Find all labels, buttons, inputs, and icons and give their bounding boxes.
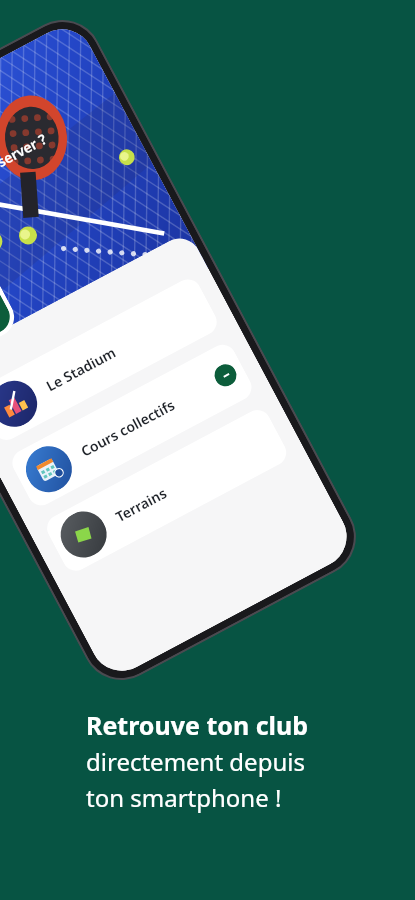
- button[interactable]: Terrains: [42, 405, 291, 575]
- button[interactable]: Le Stadium: [0, 274, 222, 445]
- staticText: Que voulez-vous réserver ?: [0, 129, 50, 232]
- staticText: Bonjour Store: [0, 118, 4, 211]
- staticText: directement depuis: [86, 745, 305, 778]
- staticText: Cours collectifs: [77, 395, 178, 461]
- button[interactable]: Aperçu de l'application sur smartphone: [0, 6, 370, 694]
- staticText: Retrouve ton club: [86, 708, 309, 742]
- button[interactable]: Logo du club: [0, 271, 16, 352]
- staticText: ton smartphone !: [86, 781, 282, 814]
- staticText: Terrains: [112, 483, 170, 526]
- staticText: Le Stadium: [43, 342, 119, 395]
- button[interactable]: Cours collectifs: [7, 340, 256, 510]
